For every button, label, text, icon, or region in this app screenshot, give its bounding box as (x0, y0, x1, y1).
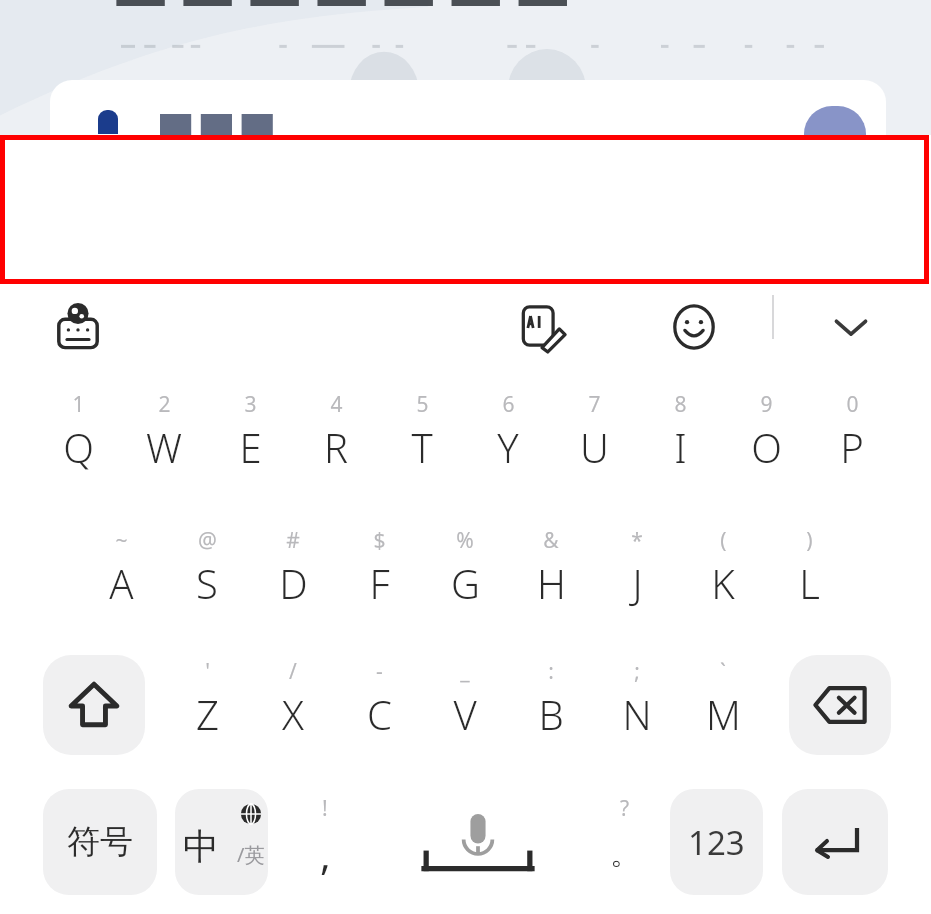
button[interactable]: 7 (551, 388, 637, 488)
button[interactable]: & (508, 524, 594, 624)
button[interactable]: Emoji (659, 292, 729, 362)
staticText: @ (198, 526, 217, 555)
staticText: A (109, 556, 134, 610)
button[interactable]: _ (422, 655, 508, 755)
button[interactable]: 符号 (43, 789, 157, 895)
staticText: /英 (237, 841, 265, 868)
staticText: I (674, 420, 687, 474)
staticText: ! (322, 794, 328, 823)
staticText: 5 (416, 390, 429, 419)
button[interactable]: ) (766, 524, 852, 624)
button[interactable]: ! (282, 789, 368, 895)
staticText: Q (63, 420, 94, 474)
staticText: 8 (674, 390, 687, 419)
staticText: S (196, 556, 218, 610)
staticText: 。 (610, 835, 640, 873)
staticText: / (289, 657, 297, 686)
staticText: Z (196, 687, 219, 741)
button[interactable]: 123 (670, 789, 763, 895)
button[interactable]: Hide keyboard (816, 292, 886, 362)
staticText: : (548, 657, 554, 686)
button[interactable]: 4 (293, 388, 379, 488)
button[interactable]: 8 (637, 388, 723, 488)
button[interactable]: Backspace (789, 655, 891, 755)
staticText: E (239, 420, 262, 474)
staticText: 符号 (67, 821, 133, 863)
button[interactable]: ( (680, 524, 766, 624)
button[interactable]: Enter (782, 789, 888, 895)
staticText: G (451, 556, 480, 610)
staticText: T (411, 420, 433, 474)
staticText: & (543, 526, 559, 555)
button[interactable]: * (594, 524, 680, 624)
staticText: Y (497, 420, 519, 474)
staticText: 4 (330, 390, 343, 419)
button[interactable]: AI writing (508, 292, 578, 362)
button[interactable]: : (508, 655, 594, 755)
staticText: K (711, 556, 735, 610)
staticText: - (376, 657, 383, 686)
staticText: X (282, 687, 304, 741)
staticText: N (622, 687, 652, 741)
staticText: B (538, 687, 564, 741)
staticText: D (279, 556, 308, 610)
button[interactable]: 5 (379, 388, 465, 488)
button[interactable]: Chinese English toggle (175, 789, 268, 895)
staticText: C (367, 687, 392, 741)
staticText: ~ (115, 526, 128, 555)
button[interactable]: ; (594, 655, 680, 755)
staticText: W (146, 420, 182, 474)
staticText: 9 (760, 390, 773, 419)
button[interactable]: / (250, 655, 336, 755)
button[interactable]: Shift (43, 655, 145, 755)
button[interactable]: 9 (723, 388, 809, 488)
button[interactable]: ` (680, 655, 766, 755)
button[interactable] (50, 80, 886, 136)
staticText: 0 (846, 390, 859, 419)
button[interactable]: 1 (35, 388, 121, 488)
staticText: 中 (183, 824, 219, 869)
staticText: R (324, 420, 348, 474)
button[interactable]: 0 (809, 388, 895, 488)
staticText: ) (806, 526, 813, 555)
staticText: * (631, 526, 643, 555)
button[interactable]: Space (378, 789, 578, 895)
staticText: $ (373, 526, 386, 555)
staticText: 123 (688, 820, 745, 865)
staticText: P (840, 420, 864, 474)
button[interactable]: # (250, 524, 336, 624)
button[interactable]: 2 (121, 388, 207, 488)
staticText: ; (634, 657, 640, 686)
button[interactable]: Input languages (43, 292, 113, 362)
staticText: H (537, 556, 566, 610)
staticText: J (632, 556, 643, 610)
staticText: % (456, 526, 474, 555)
staticText: , (320, 827, 331, 881)
staticText: ' (205, 657, 210, 686)
staticText: 6 (502, 390, 515, 419)
button[interactable]: @ (164, 524, 250, 624)
staticText: O (751, 420, 782, 474)
staticText: ` (720, 657, 726, 686)
staticText: # (286, 526, 300, 555)
staticText: ( (720, 526, 727, 555)
button[interactable]: ~ (78, 524, 164, 624)
staticText: V (453, 687, 477, 741)
button[interactable]: - (336, 655, 422, 755)
staticText: 1 (72, 390, 85, 419)
button[interactable]: % (422, 524, 508, 624)
button[interactable]: $ (336, 524, 422, 624)
button[interactable]: ' (164, 655, 250, 755)
button[interactable]: 3 (207, 388, 293, 488)
staticText: M (706, 687, 741, 741)
button[interactable]: ? (585, 789, 665, 895)
staticText: 2 (158, 390, 171, 419)
staticText: 3 (244, 390, 257, 419)
staticText: 7 (588, 390, 601, 419)
staticText: ? (620, 794, 630, 823)
button[interactable]: 6 (465, 388, 551, 488)
staticText: U (580, 420, 609, 474)
staticText: _ (460, 657, 470, 686)
staticText: F (369, 556, 390, 610)
staticText: L (799, 556, 820, 610)
